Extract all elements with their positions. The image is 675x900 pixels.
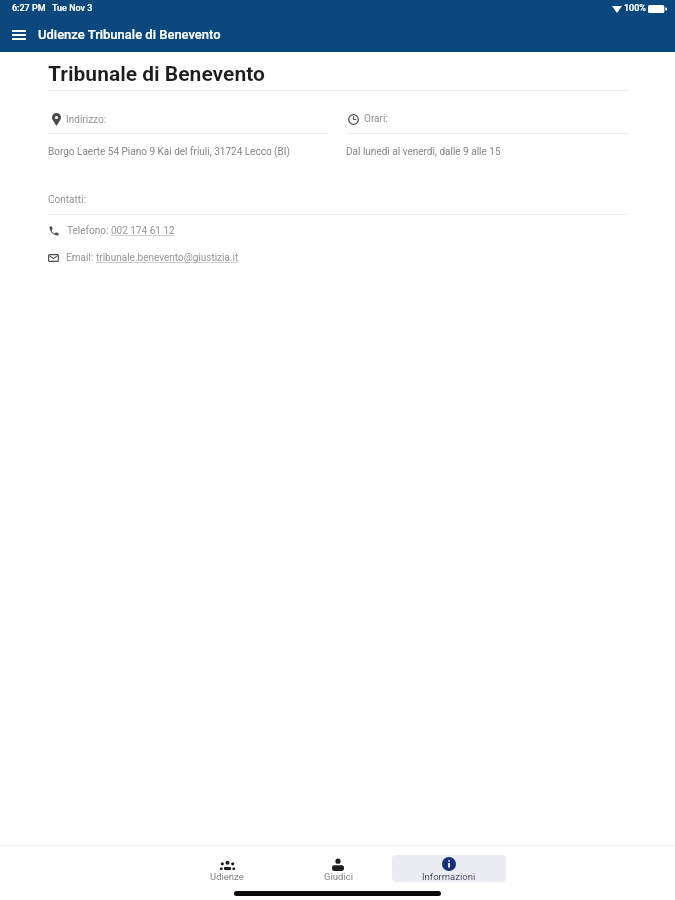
button[interactable]: Informazioni <box>392 855 506 882</box>
staticText: Contatti: <box>48 194 86 206</box>
staticText: Tue Nov 3 <box>52 3 93 14</box>
button[interactable]: Open navigation menu <box>0 17 38 52</box>
button[interactable]: Udienze <box>187 855 267 882</box>
staticText: Informazioni <box>422 871 476 882</box>
staticText: Udienze <box>210 871 244 882</box>
button[interactable]: Telefono: <box>48 225 627 237</box>
button[interactable]: Email: <box>48 252 627 264</box>
staticText: Indirizzo: <box>66 114 107 126</box>
staticText: Email: <box>66 252 96 264</box>
staticText: 100% <box>624 3 646 14</box>
staticText: Tribunale di Benevento <box>48 62 265 87</box>
staticText: Giudici <box>324 871 353 882</box>
staticText: Orari: <box>364 113 388 125</box>
button[interactable]: Giudici <box>298 855 378 882</box>
staticText: tribunale.benevento@giustizia.it <box>96 252 239 264</box>
staticText: Udienze Tribunale di Benevento <box>38 27 221 42</box>
staticText: 6:27 PM <box>12 3 46 14</box>
staticText: 002 174 61 12 <box>111 225 175 237</box>
staticText: Dal lunedì al venerdì, dalle 9 alle 15 <box>346 146 501 158</box>
staticText: Borgo Laerte 54 Piano 9 Kai del friuli, … <box>48 146 290 158</box>
staticText: Telefono: <box>67 225 111 237</box>
